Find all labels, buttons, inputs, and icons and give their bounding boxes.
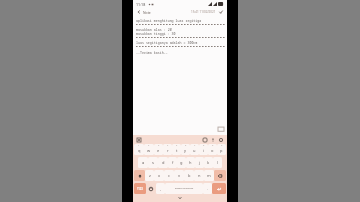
button[interactable]: Backspace	[214, 170, 226, 181]
staticText: q	[138, 148, 141, 153]
button[interactable]: .	[203, 183, 212, 194]
staticText: f	[172, 160, 174, 165]
staticText: t	[176, 148, 178, 153]
staticText: n	[198, 173, 201, 178]
staticText: x	[158, 173, 161, 178]
button[interactable]: h	[186, 157, 195, 168]
staticText: b	[188, 173, 191, 178]
button[interactable]: Shift	[134, 170, 145, 181]
button[interactable]: Edit note	[218, 126, 224, 132]
staticText: 2	[148, 144, 150, 147]
button[interactable]: s	[148, 157, 158, 168]
staticText: aplikasi menghitung luas segitiga	[136, 18, 202, 22]
staticText: --Terima kasih--	[136, 50, 168, 54]
button[interactable]: k	[204, 157, 213, 168]
staticText: z	[149, 173, 151, 178]
staticText: ,	[160, 186, 161, 191]
button[interactable]: Voice input	[210, 137, 216, 143]
button[interactable]: Enter	[212, 183, 226, 194]
staticText: Bahasa Indonesia	[175, 187, 194, 190]
button[interactable]: 7	[190, 144, 199, 155]
staticText: 5	[176, 144, 178, 147]
button[interactable]: Save	[218, 9, 224, 15]
button[interactable]: Stickers	[202, 137, 208, 143]
button[interactable]: 4	[163, 144, 172, 155]
staticText: o	[211, 148, 214, 153]
button[interactable]: x	[154, 170, 164, 181]
button[interactable]: d	[158, 157, 168, 168]
staticText: 6	[185, 144, 187, 147]
staticText: y	[184, 148, 187, 153]
staticText: k	[207, 160, 210, 165]
button[interactable]: f	[168, 157, 177, 168]
staticText: s	[152, 160, 154, 165]
button[interactable]: 9	[208, 144, 217, 155]
staticText: 3	[158, 144, 160, 147]
button[interactable]: Bahasa Indonesia	[165, 183, 203, 194]
button[interactable]: j	[195, 157, 204, 168]
button[interactable]: Emoji	[146, 183, 156, 194]
button[interactable]: ?123	[134, 183, 146, 194]
staticText: 0	[221, 144, 223, 147]
staticText: p	[220, 148, 223, 153]
button[interactable]: Clipboard	[136, 137, 142, 143]
button[interactable]: c	[164, 170, 174, 181]
staticText: ?123	[137, 187, 143, 191]
staticText: 15:41 11/02/2021	[191, 10, 216, 14]
staticText: v	[178, 173, 181, 178]
button[interactable]: n	[194, 170, 204, 181]
button[interactable]: z	[145, 170, 154, 181]
staticText: r	[167, 148, 169, 153]
staticText: masukkan alas : 20	[136, 27, 172, 31]
staticText: w	[147, 148, 151, 153]
staticText: 1	[138, 144, 140, 147]
button[interactable]: m	[204, 170, 214, 181]
button[interactable]: Settings	[218, 137, 224, 143]
staticText: a	[142, 160, 145, 165]
button[interactable]: 6	[181, 144, 190, 155]
button[interactable]: b	[184, 170, 194, 181]
staticText: e	[157, 148, 160, 153]
staticText: u	[193, 148, 196, 153]
button[interactable]: 8	[199, 144, 208, 155]
staticText: luas segitiganya adalah = 300cm	[136, 40, 198, 44]
button[interactable]: Note	[143, 10, 151, 15]
button[interactable]: ,	[156, 183, 165, 194]
staticText: 11:18	[136, 2, 146, 7]
button[interactable]: 0	[217, 144, 226, 155]
button[interactable]: 3	[154, 144, 163, 155]
staticText: Note	[143, 10, 151, 15]
staticText: c	[168, 173, 170, 178]
staticText: h	[189, 160, 192, 165]
staticText: m	[207, 173, 211, 178]
staticText: g	[180, 160, 183, 165]
staticText: i	[203, 148, 205, 153]
staticText: 4	[167, 144, 169, 147]
staticText: l	[217, 160, 219, 165]
staticText: d	[162, 160, 165, 165]
staticText: masukkan tinggi : 30	[136, 31, 176, 35]
button[interactable]: v	[174, 170, 184, 181]
staticText: 8	[203, 144, 205, 147]
button[interactable]: l	[213, 157, 222, 168]
button[interactable]: 5	[172, 144, 181, 155]
button[interactable]: 2	[144, 144, 154, 155]
staticText: 7	[194, 144, 196, 147]
button[interactable]: Back	[136, 9, 142, 15]
staticText: 9	[212, 144, 214, 147]
button[interactable]: g	[177, 157, 186, 168]
button[interactable]: a	[138, 157, 148, 168]
button[interactable]: 1	[134, 144, 144, 155]
staticText: j	[199, 160, 201, 165]
staticText: .	[207, 186, 208, 191]
